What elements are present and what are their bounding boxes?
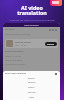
button[interactable]: NEW [50,0,62,6]
button[interactable]: Translate [45,42,57,46]
button[interactable]: Close [54,72,58,76]
staticText: Upload a video to translate [5,33,31,36]
button[interactable]: French [3,85,60,90]
staticText: Select video language [5,72,26,75]
staticText: AI video translation [0,4,64,17]
staticText: NEW [52,1,60,5]
staticText: Translate the video into another languag… [0,19,64,22]
staticText: Translate [47,43,55,45]
staticText: Translated language [5,59,23,61]
staticText: English [28,77,35,80]
button[interactable]: Interview_clip.mp4 [5,39,58,48]
staticText: Original video language [5,63,26,65]
button[interactable]: Spanish [3,80,60,85]
staticText: Video translator [24,24,39,27]
button[interactable]: Hindi [3,95,60,100]
staticText: Interview_clip.mp4 [15,41,32,43]
staticText: German [28,91,36,94]
staticText: Hindi [29,96,34,99]
button[interactable]: English [3,76,60,80]
staticText: Spanish → English [5,55,22,57]
button[interactable]: German [3,90,60,95]
staticText: Recent translations [5,50,24,53]
staticText: French [28,86,35,89]
staticText: 00:42 • 12 MB [15,44,27,46]
staticText: My videos [5,28,15,31]
staticText: Spanish [28,81,36,84]
